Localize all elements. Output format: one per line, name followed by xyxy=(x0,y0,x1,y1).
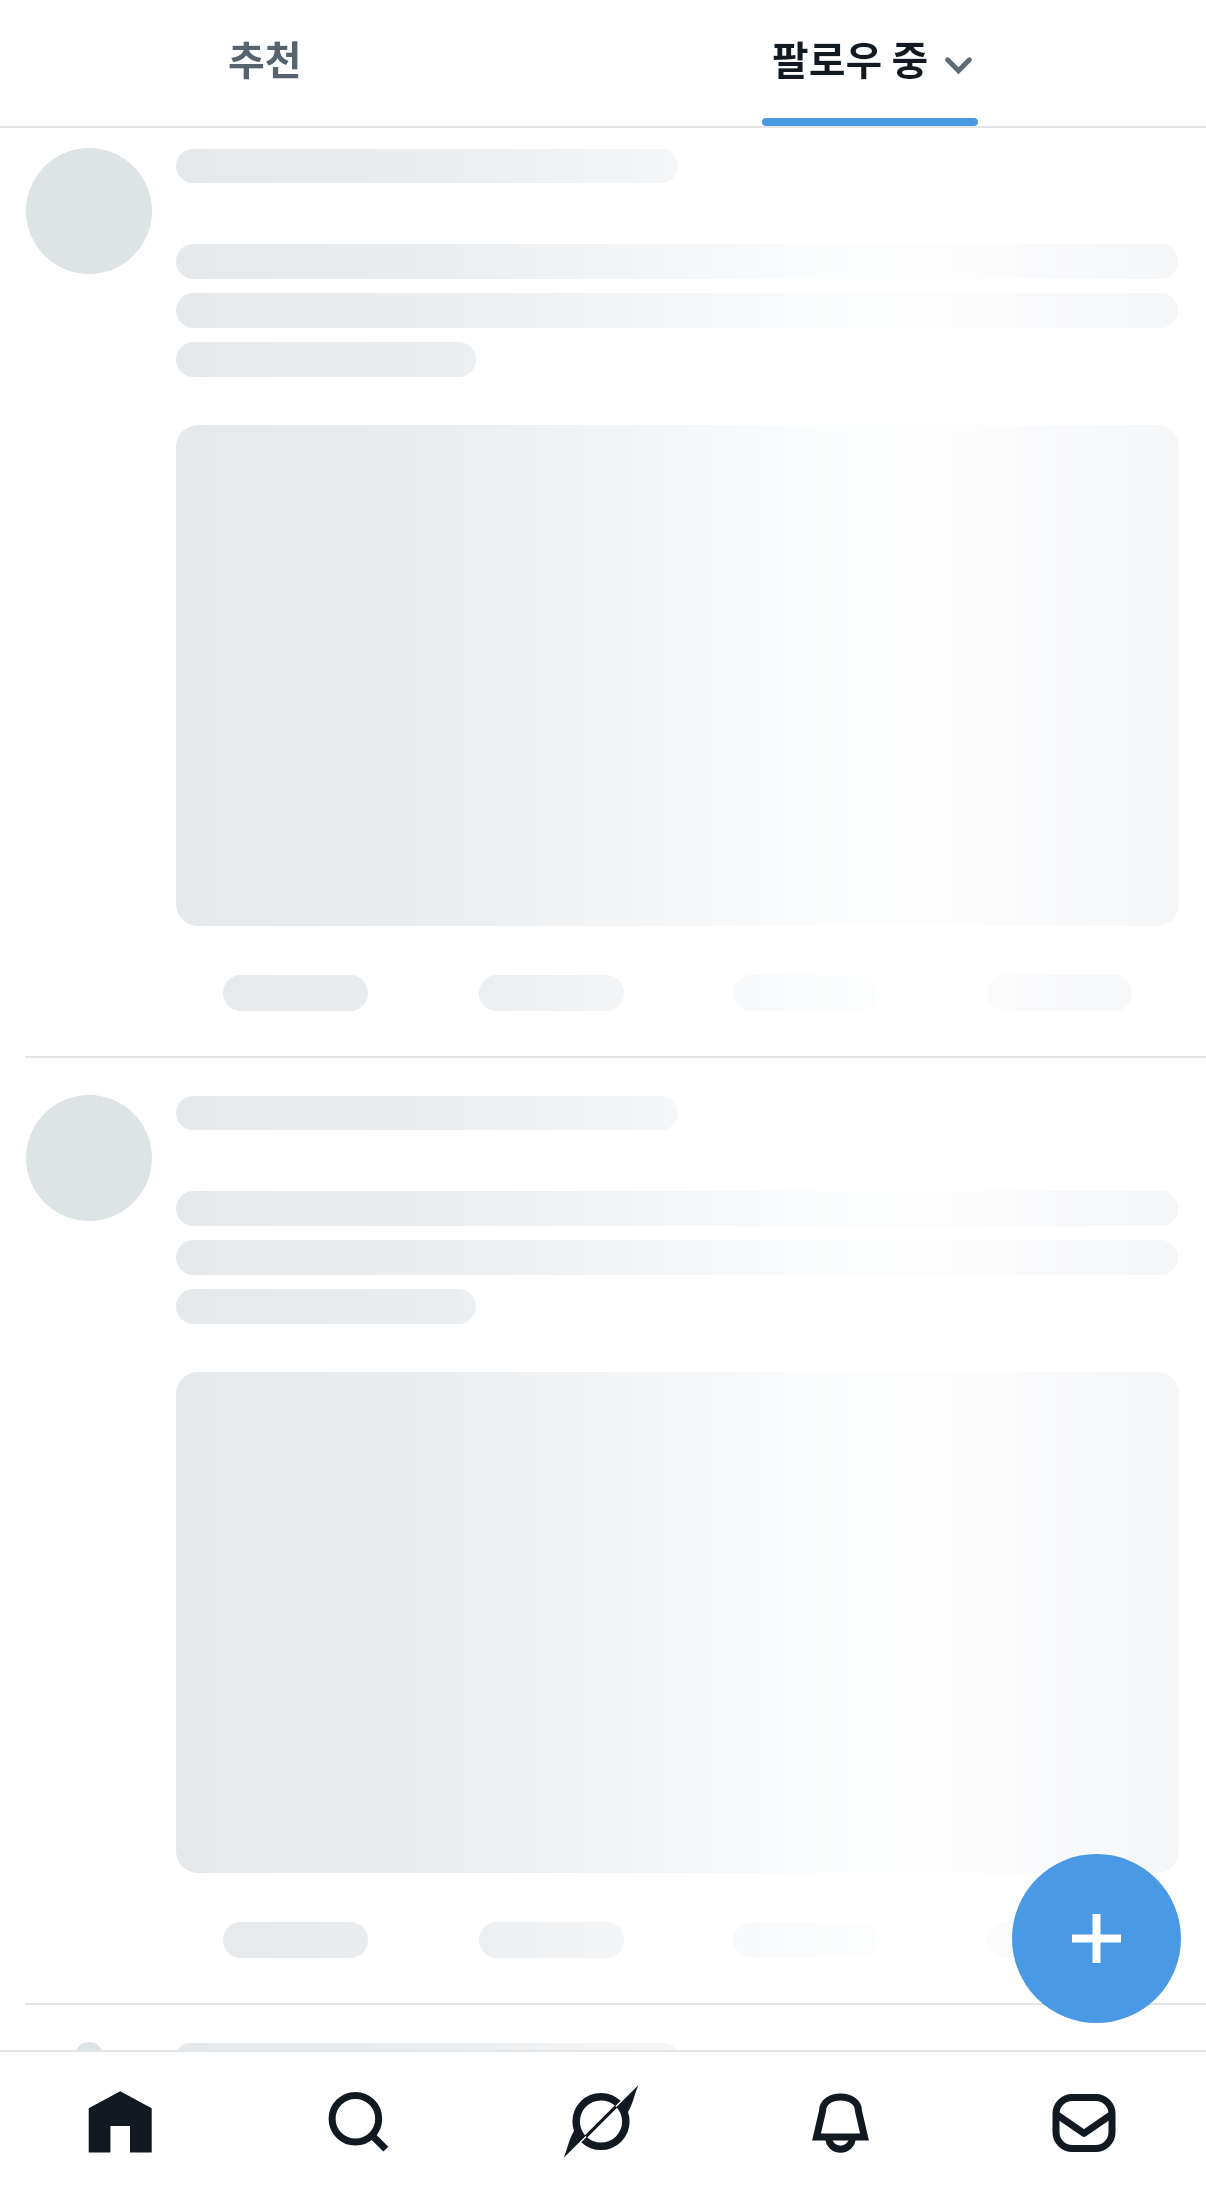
button[interactable]: Compose post xyxy=(1012,1854,1181,2023)
button[interactable]: Search xyxy=(241,2050,482,2197)
button[interactable]: 팔로우 중 xyxy=(530,0,1206,126)
staticText: 팔로우 중 xyxy=(772,29,929,87)
staticText: 추천 xyxy=(228,29,302,87)
button[interactable]: Home xyxy=(0,2050,241,2197)
button[interactable]: Grok xyxy=(483,2050,724,2197)
button[interactable]: Notifications xyxy=(724,2050,965,2197)
button[interactable]: Messages xyxy=(965,2050,1206,2197)
button[interactable]: 추천 xyxy=(0,0,530,126)
